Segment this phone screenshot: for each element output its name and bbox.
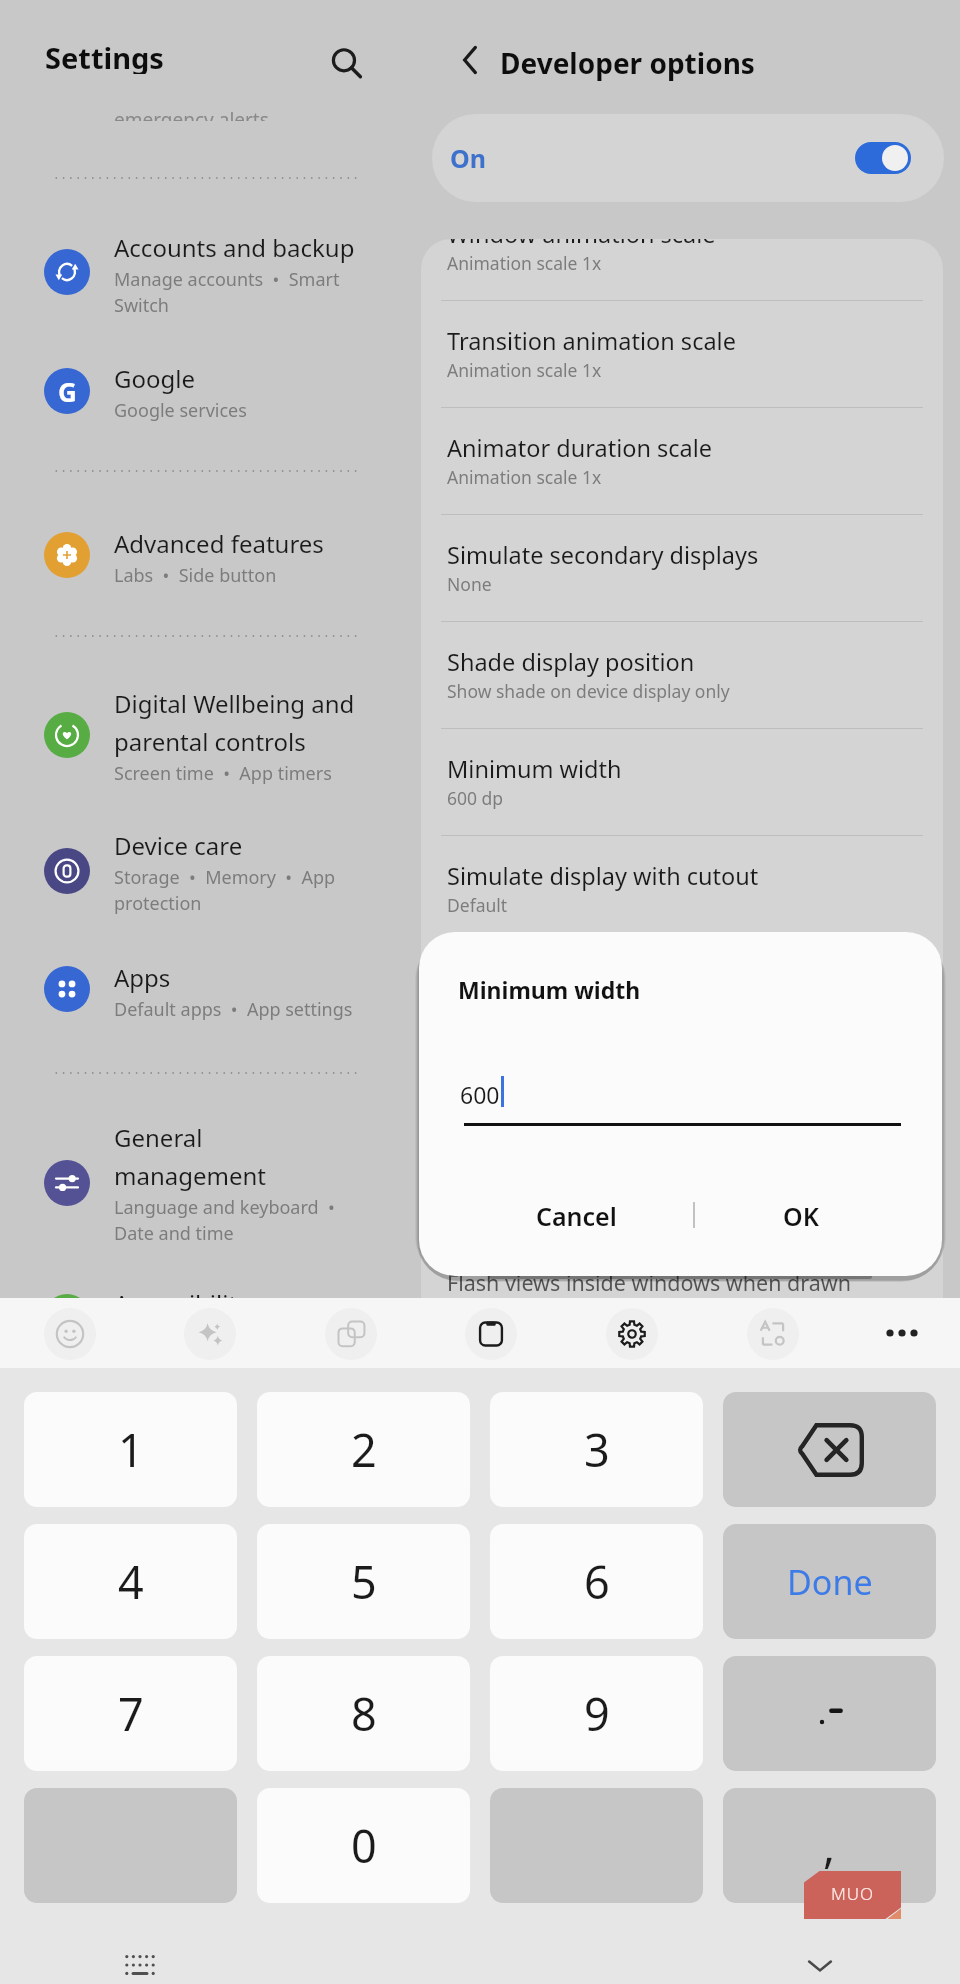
button[interactable]: Done (723, 1524, 936, 1639)
staticText: Allow multi-window (447, 1107, 608, 1131)
button[interactable] (421, 1058, 943, 1165)
button[interactable] (421, 1258, 943, 1309)
staticText: 600 dp (447, 786, 504, 810)
staticText: Advanced features (114, 527, 324, 560)
staticText: Minimum width (458, 974, 641, 1005)
staticText: MUO (831, 1882, 875, 1905)
staticText: 600 (460, 1079, 500, 1110)
button[interactable] (0, 215, 417, 331)
button[interactable]: 6 (490, 1524, 703, 1639)
button[interactable]: Keyboard layout (120, 1945, 160, 1984)
button[interactable] (0, 1271, 417, 1331)
staticText: Storage • Memory • App protection (114, 865, 336, 916)
button[interactable]: Dot and dash (723, 1656, 936, 1771)
button[interactable]: 8 (257, 1656, 470, 1771)
staticText: Cancel (536, 1199, 617, 1233)
staticText: Window animation scale (447, 239, 716, 250)
button[interactable]: Settings (45, 38, 164, 74)
staticText: Flash views inside windows when drawn (447, 1268, 851, 1297)
staticText: OK (783, 1199, 819, 1233)
staticText: emergency alerts (114, 110, 269, 121)
button[interactable] (421, 630, 943, 737)
button[interactable]: Settings (587, 1299, 677, 1369)
button[interactable] (421, 1165, 943, 1272)
button[interactable]: 1 (24, 1392, 237, 1507)
staticText: Developer options (500, 44, 755, 82)
button[interactable]: OK (686, 1183, 916, 1249)
staticText: 2 (351, 1419, 377, 1480)
staticText: , (823, 1815, 836, 1876)
button[interactable]: 0 (257, 1788, 470, 1903)
staticText: Shade display position (447, 646, 695, 678)
staticText: Google (114, 362, 195, 395)
staticText: Settings (45, 38, 164, 74)
button[interactable]: Hide keyboard (800, 1945, 840, 1984)
staticText: Enable freeform windows (447, 1074, 729, 1106)
button[interactable] (0, 671, 417, 787)
staticText: Default apps • App settings (114, 997, 353, 1022)
button[interactable] (421, 951, 943, 1058)
staticText: Labs • Side button (114, 563, 277, 588)
staticText: Google services (114, 398, 247, 423)
staticText: Device care (114, 829, 243, 862)
button[interactable] (421, 523, 943, 630)
button[interactable] (421, 737, 943, 844)
button[interactable] (0, 511, 417, 603)
button[interactable]: 5 (257, 1524, 470, 1639)
button[interactable]: Backspace (723, 1392, 936, 1507)
staticText: Force desktop mode (447, 967, 672, 999)
staticText: Animation scale 1x (447, 251, 602, 275)
button[interactable]: Emoji (25, 1299, 115, 1369)
button[interactable]: Clipboard (446, 1299, 536, 1369)
staticText: Flash entire window surfaces (447, 1214, 685, 1238)
staticText: Show shade on device display only (447, 679, 730, 703)
staticText: On (450, 141, 487, 175)
staticText: Show surface updates (447, 1181, 690, 1213)
button[interactable]: Cancel (450, 1183, 703, 1249)
button[interactable]: 4 (24, 1524, 237, 1639)
staticText: 3 (584, 1419, 610, 1480)
button[interactable]: On (432, 114, 944, 202)
button[interactable] (421, 416, 943, 523)
button[interactable]: More options (868, 1299, 936, 1367)
staticText: 1 (118, 1419, 144, 1480)
button[interactable]: Back (444, 34, 496, 86)
staticText: Manage accounts • Smart Switch (114, 267, 340, 318)
staticText: Apps (114, 961, 171, 994)
staticText: Done (787, 1559, 873, 1605)
button[interactable]: 9 (490, 1656, 703, 1771)
button[interactable] (0, 1105, 417, 1221)
button[interactable]: Translate (306, 1299, 396, 1369)
staticText: Simulate display with cutout (447, 860, 759, 892)
staticText: General management (114, 1121, 266, 1192)
button[interactable] (421, 309, 943, 416)
button[interactable]: 7 (24, 1656, 237, 1771)
button[interactable] (421, 239, 943, 309)
staticText: Simulate secondary displays (447, 539, 759, 571)
staticText: Animation scale 1x (447, 358, 602, 382)
staticText: 6 (584, 1551, 610, 1612)
button[interactable] (0, 346, 417, 438)
button[interactable]: , (723, 1788, 936, 1903)
button[interactable] (421, 844, 943, 951)
staticText: Language and keyboard • Date and time (114, 1195, 335, 1246)
staticText: Default (447, 893, 508, 917)
staticText: 8 (351, 1683, 377, 1744)
staticText: 7 (118, 1683, 144, 1744)
button[interactable] (0, 945, 417, 1037)
button[interactable] (0, 813, 417, 929)
button[interactable]: AI suggestions (165, 1299, 255, 1369)
button[interactable]: 2 (257, 1392, 470, 1507)
button[interactable]: 3 (490, 1392, 703, 1507)
staticText: Minimum width (447, 753, 622, 785)
staticText: Digital Wellbeing and parental controls (114, 687, 355, 758)
button[interactable]: Search (318, 35, 374, 91)
staticText: Accounts and backup (114, 231, 355, 264)
staticText: G (58, 374, 77, 409)
staticText: Animation scale 1x (447, 465, 602, 489)
staticText: Accessibility (114, 1287, 250, 1320)
button[interactable]: Modes (728, 1299, 818, 1369)
